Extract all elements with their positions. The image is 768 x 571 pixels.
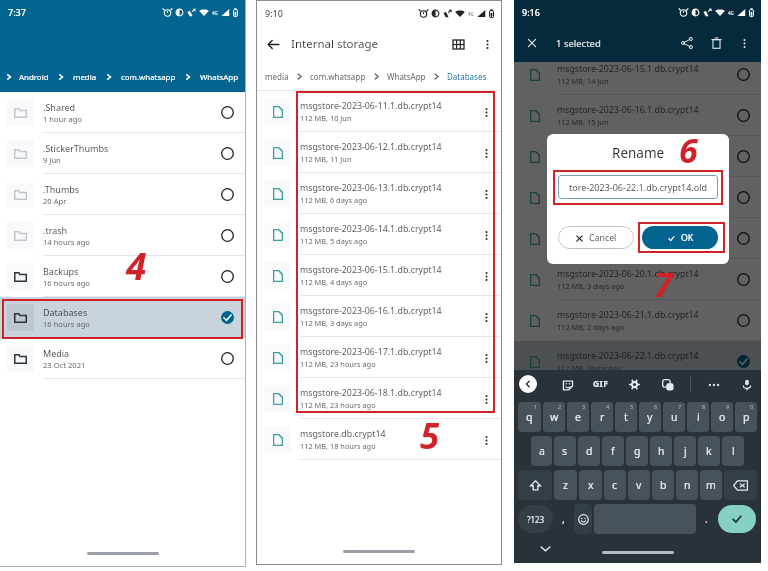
- button[interactable]: msgstore-2023-06-18.1.db.crypt14: [514, 177, 761, 218]
- staticText: c: [612, 478, 618, 492]
- button[interactable]: Share: [677, 33, 697, 53]
- button[interactable]: ,: [555, 504, 572, 534]
- button[interactable]: [518, 470, 552, 500]
- staticText: 16 hours ago: [43, 319, 90, 329]
- button[interactable]: a: [531, 436, 552, 466]
- button[interactable]: r: [591, 402, 613, 432]
- button[interactable]: More options: [476, 102, 496, 122]
- button[interactable]: More: [706, 377, 721, 392]
- button[interactable]: j: [674, 436, 696, 466]
- button[interactable]: Back: [519, 375, 537, 393]
- button[interactable]: msgstore-2023-06-13.1.db.crypt14: [257, 173, 501, 214]
- staticText: msgstore-2023-06-14.1.db.crypt14: [300, 223, 442, 235]
- button[interactable]: x: [579, 470, 602, 500]
- button[interactable]: Cancel: [558, 226, 634, 249]
- button[interactable]: e: [567, 402, 589, 432]
- button[interactable]: msgstore-2023-06-11.1.db.crypt14: [257, 91, 501, 132]
- staticText: 112 MB, 10 Jun: [300, 113, 352, 123]
- button[interactable]: y: [639, 402, 661, 432]
- button[interactable]: msgstore-2023-06-21.1.db.crypt14: [514, 300, 761, 341]
- button[interactable]: u: [663, 402, 685, 432]
- button[interactable]: n: [676, 470, 698, 500]
- button[interactable]: Media: [0, 338, 245, 379]
- button[interactable]: [724, 470, 757, 500]
- staticText: tore-2023-06-22.1.db.crypt14.old: [569, 181, 708, 193]
- button[interactable]: [574, 504, 592, 534]
- button[interactable]: Stickers: [560, 377, 575, 392]
- button[interactable]: msgstore-2023-06-22.1.db.crypt14: [514, 341, 761, 382]
- button[interactable]: More options: [476, 143, 496, 163]
- button[interactable]: b: [652, 470, 674, 500]
- staticText: 4G: [212, 10, 218, 16]
- button[interactable]: w: [543, 402, 565, 432]
- button[interactable]: More options: [476, 225, 496, 245]
- button[interactable]: Grid view: [448, 34, 468, 54]
- button[interactable]: k: [698, 436, 720, 466]
- button[interactable]: .Shared: [0, 92, 245, 133]
- button[interactable]: .StickerThumbs: [0, 133, 245, 174]
- button[interactable]: z: [554, 470, 577, 500]
- staticText: s: [562, 444, 568, 458]
- staticText: 112 MB, 18 hours ago: [300, 441, 376, 451]
- button[interactable]: i: [687, 402, 709, 432]
- staticText: 8: [702, 403, 706, 410]
- button[interactable]: msgstore.db.crypt14: [257, 419, 501, 460]
- button[interactable]: f: [602, 436, 624, 466]
- button[interactable]: More options: [476, 389, 496, 409]
- button[interactable]: msgstore-2023-06-16.1.db.crypt14: [257, 296, 501, 337]
- button[interactable]: .trash: [0, 215, 245, 256]
- button[interactable]: g: [626, 436, 648, 466]
- button[interactable]: More options: [476, 430, 496, 450]
- staticText: v: [636, 478, 642, 492]
- button[interactable]: p: [735, 402, 757, 432]
- button[interactable]: Enter: [718, 505, 756, 533]
- button[interactable]: Databases: [0, 297, 245, 338]
- button[interactable]: s: [554, 436, 576, 466]
- staticText: b: [660, 478, 667, 492]
- button[interactable]: msgstore-2023-06-15.1.db.crypt14: [257, 255, 501, 296]
- button[interactable]: Settings: [627, 377, 642, 392]
- button[interactable]: h: [650, 436, 672, 466]
- staticText: 20 Apr: [43, 196, 67, 206]
- staticText: 112 MB, 4 days ago: [300, 277, 368, 287]
- staticText: msgstore-2023-06-19.1.db.crypt14: [557, 227, 699, 239]
- button[interactable]: ?123: [518, 505, 553, 533]
- button[interactable]: More options: [735, 34, 753, 52]
- button[interactable]: msgstore-2023-06-17.1.db.crypt14: [257, 337, 501, 378]
- button[interactable]: msgstore-2023-06-15.1.db.crypt14: [514, 54, 761, 95]
- button[interactable]: OK: [642, 226, 718, 249]
- button[interactable]: .: [698, 504, 715, 534]
- button[interactable]: Backups: [0, 256, 245, 297]
- button[interactable]: More options: [476, 266, 496, 286]
- button[interactable]: msgstore-2023-06-12.1.db.crypt14: [257, 132, 501, 173]
- button[interactable]: Delete: [706, 33, 726, 53]
- staticText: Cancel: [589, 232, 617, 244]
- button[interactable]: Back: [263, 34, 283, 54]
- button[interactable]: More options: [477, 34, 497, 54]
- button[interactable]: msgstore-2023-06-17.1.db.crypt14: [514, 136, 761, 177]
- button[interactable]: msgstore-2023-06-14.1.db.crypt14: [257, 214, 501, 255]
- button[interactable]: More options: [476, 348, 496, 368]
- staticText: 23 Oct 2021: [43, 360, 86, 370]
- button[interactable]: o: [711, 402, 733, 432]
- button[interactable]: l: [722, 436, 744, 466]
- button[interactable]: d: [578, 436, 600, 466]
- button[interactable]: q: [518, 402, 541, 432]
- button[interactable]: v: [628, 470, 650, 500]
- button[interactable]: GIF: [593, 378, 609, 390]
- button[interactable]: Close selection: [522, 33, 542, 53]
- button[interactable]: msgstore-2023-06-19.1.db.crypt14: [514, 218, 761, 259]
- button[interactable]: m: [700, 470, 722, 500]
- button[interactable]: msgstore-2023-06-20.1.db.crypt14: [514, 259, 761, 300]
- button[interactable]: t: [615, 402, 637, 432]
- button[interactable]: msgstore-2023-06-16.1.db.crypt14: [514, 95, 761, 136]
- button[interactable]: msgstore-2023-06-18.1.db.crypt14: [257, 378, 501, 419]
- button[interactable]: More options: [476, 184, 496, 204]
- button[interactable]: Voice input: [739, 377, 754, 392]
- button[interactable]: tore-2023-06-22.1.db.crypt14.old: [558, 175, 718, 199]
- button[interactable]: .Thumbs: [0, 174, 245, 215]
- button[interactable]: Translate: [660, 377, 675, 392]
- button[interactable]: More options: [476, 307, 496, 327]
- button[interactable]: c: [604, 470, 626, 500]
